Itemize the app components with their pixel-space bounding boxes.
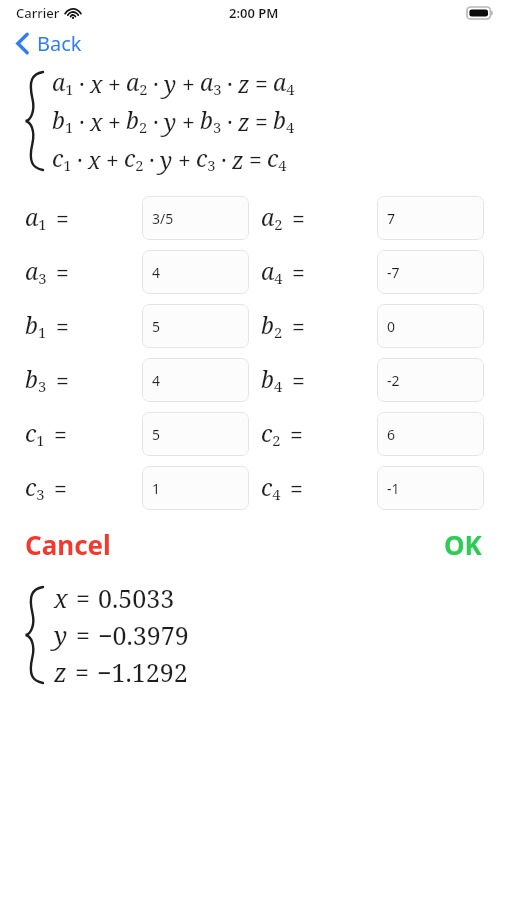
staticText: b4 bbox=[261, 363, 283, 397]
staticText: -2 bbox=[387, 371, 400, 390]
staticText: · bbox=[77, 144, 83, 175]
staticText: = bbox=[56, 365, 69, 396]
staticText: 5 bbox=[152, 317, 161, 336]
staticText: = bbox=[292, 365, 305, 396]
staticText: z bbox=[232, 144, 244, 175]
other: Back bbox=[16, 33, 29, 54]
staticText: 0.5033 bbox=[98, 581, 175, 615]
staticText: c1 bbox=[52, 142, 72, 176]
staticText: a4 bbox=[273, 66, 295, 100]
staticText: c1 bbox=[25, 417, 45, 451]
staticText: = bbox=[54, 419, 67, 450]
button[interactable]: -2 bbox=[377, 358, 484, 402]
button[interactable]: 3/5 bbox=[142, 196, 249, 240]
button[interactable]: -7 bbox=[377, 250, 484, 294]
staticText: = bbox=[56, 203, 69, 234]
staticText: = bbox=[56, 257, 69, 288]
staticText: −0.3979 bbox=[98, 618, 189, 652]
staticText: y bbox=[164, 106, 177, 137]
button[interactable]: 5 bbox=[142, 304, 249, 348]
staticText: c2 bbox=[261, 417, 281, 451]
staticText: = bbox=[255, 68, 268, 99]
staticText: = bbox=[54, 473, 67, 504]
staticText: 5 bbox=[152, 425, 161, 444]
staticText: c3 bbox=[25, 471, 45, 505]
staticText: = bbox=[290, 473, 303, 504]
button[interactable]: 0 bbox=[377, 304, 484, 348]
button[interactable]: Cancel bbox=[0, 527, 125, 562]
staticText: -7 bbox=[387, 263, 400, 282]
staticText: x bbox=[54, 581, 68, 615]
staticText: b3 bbox=[25, 363, 47, 397]
button[interactable]: Back bbox=[0, 26, 94, 60]
staticText: b2 bbox=[126, 104, 148, 138]
staticText: 2:00 PM bbox=[229, 4, 279, 22]
staticText: −1.1292 bbox=[97, 655, 188, 689]
staticText: c3 bbox=[196, 142, 216, 176]
staticText: 6 bbox=[387, 425, 396, 444]
staticText: · bbox=[79, 106, 85, 137]
staticText: = bbox=[249, 144, 262, 175]
staticText: Back bbox=[37, 30, 82, 57]
staticText: x bbox=[88, 144, 101, 175]
button[interactable]: 1 bbox=[142, 466, 249, 510]
button[interactable]: 7 bbox=[377, 196, 484, 240]
staticText: = bbox=[76, 581, 90, 615]
staticText: 0 bbox=[387, 317, 396, 336]
staticText: = bbox=[56, 311, 69, 342]
staticText: 4 bbox=[152, 263, 161, 282]
staticText: OK bbox=[444, 527, 482, 562]
staticText: = bbox=[75, 655, 89, 689]
staticText: b2 bbox=[261, 309, 283, 343]
staticText: b4 bbox=[273, 104, 295, 138]
staticText: b3 bbox=[200, 104, 222, 138]
staticText: z bbox=[238, 106, 250, 137]
staticText: Cancel bbox=[25, 527, 111, 562]
staticText: a2 bbox=[126, 66, 148, 100]
staticText: a3 bbox=[25, 255, 47, 289]
staticText: · bbox=[153, 68, 159, 99]
staticText: + bbox=[178, 144, 191, 175]
button[interactable]: OK bbox=[430, 527, 507, 562]
staticText: = bbox=[290, 419, 303, 450]
staticText: z bbox=[238, 68, 250, 99]
staticText: · bbox=[221, 144, 227, 175]
button[interactable]: 6 bbox=[377, 412, 484, 456]
staticText: + bbox=[106, 144, 119, 175]
staticText: = bbox=[76, 618, 90, 652]
staticText: 7 bbox=[387, 209, 396, 228]
button[interactable]: 4 bbox=[142, 250, 249, 294]
staticText: + bbox=[108, 68, 121, 99]
staticText: + bbox=[108, 106, 121, 137]
staticText: · bbox=[227, 106, 233, 137]
staticText: · bbox=[149, 144, 155, 175]
staticText: y bbox=[54, 618, 68, 652]
button[interactable]: 5 bbox=[142, 412, 249, 456]
staticText: a3 bbox=[200, 66, 222, 100]
staticText: a2 bbox=[261, 201, 283, 235]
staticText: + bbox=[182, 106, 195, 137]
staticText: · bbox=[153, 106, 159, 137]
button[interactable]: -1 bbox=[377, 466, 484, 510]
staticText: c2 bbox=[124, 142, 144, 176]
staticText: = bbox=[292, 203, 305, 234]
staticText: y bbox=[160, 144, 173, 175]
button[interactable]: 4 bbox=[142, 358, 249, 402]
staticText: Carrier bbox=[16, 4, 60, 22]
staticText: x bbox=[90, 106, 103, 137]
staticText: x bbox=[90, 68, 103, 99]
staticText: 4 bbox=[152, 371, 161, 390]
staticText: 1 bbox=[152, 479, 161, 498]
staticText: c4 bbox=[267, 142, 287, 176]
staticText: · bbox=[79, 68, 85, 99]
staticText: = bbox=[292, 257, 305, 288]
staticText: b1 bbox=[25, 309, 47, 343]
staticText: a1 bbox=[25, 201, 47, 235]
staticText: -1 bbox=[387, 479, 400, 498]
staticText: = bbox=[292, 311, 305, 342]
staticText: z bbox=[54, 655, 67, 689]
staticText: + bbox=[182, 68, 195, 99]
staticText: c4 bbox=[261, 471, 281, 505]
staticText: a4 bbox=[261, 255, 283, 289]
staticText: = bbox=[255, 106, 268, 137]
